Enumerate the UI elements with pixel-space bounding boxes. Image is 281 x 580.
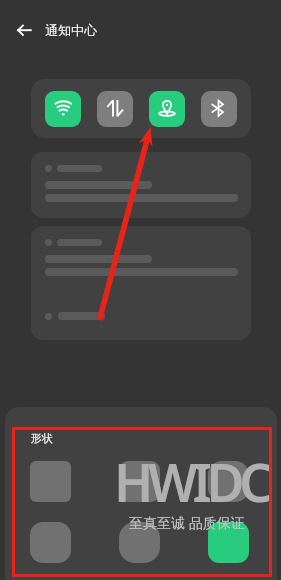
- button[interactable]: Shape option: [30, 461, 71, 502]
- button[interactable]: Shape option: [119, 522, 160, 563]
- button[interactable]: Wi-Fi: [45, 91, 81, 127]
- button[interactable]: [31, 152, 251, 218]
- staticText: 通知中心: [45, 22, 97, 38]
- button[interactable]: Mobile data: [97, 91, 133, 127]
- button[interactable]: Back: [6, 12, 42, 48]
- button[interactable]: [31, 226, 251, 340]
- staticText: 至真至诚 品质保证: [129, 513, 245, 532]
- button[interactable]: Bluetooth: [201, 91, 237, 127]
- button[interactable]: Shape option: [30, 522, 71, 563]
- staticText: HWIDC: [114, 446, 268, 517]
- button[interactable]: Shape option: [208, 461, 249, 502]
- button[interactable]: Shape option: [208, 522, 249, 563]
- button[interactable]: Shape option: [119, 461, 160, 502]
- staticText: 形状: [31, 431, 53, 445]
- button[interactable]: Location: [149, 91, 185, 127]
